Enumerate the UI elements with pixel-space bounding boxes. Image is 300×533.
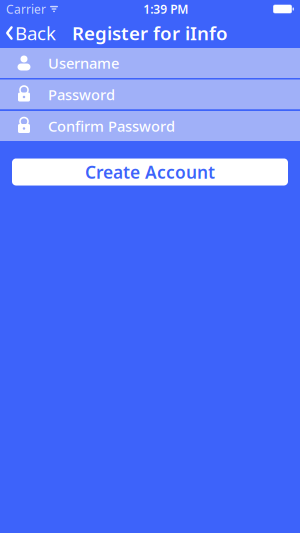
staticText: Carrier bbox=[6, 1, 46, 17]
staticText: Confirm Password bbox=[48, 116, 175, 136]
button[interactable]: Create Account bbox=[12, 158, 288, 185]
staticText: Username bbox=[48, 53, 119, 73]
staticText: Password bbox=[48, 85, 115, 104]
staticText: Back bbox=[15, 21, 56, 45]
button[interactable]: Username bbox=[0, 48, 300, 79]
button[interactable]: Password bbox=[0, 79, 300, 111]
button[interactable]: Confirm Password bbox=[0, 111, 300, 142]
button[interactable]: Back bbox=[0, 17, 56, 49]
staticText: Create Account bbox=[85, 160, 215, 183]
staticText: 1:39 PM bbox=[143, 1, 188, 17]
staticText: Register for iInfo bbox=[72, 21, 228, 45]
